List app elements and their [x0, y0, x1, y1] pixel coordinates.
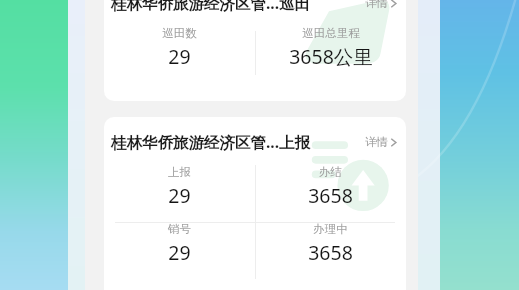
staticText: 29 — [168, 43, 191, 70]
button[interactable]: 详情 — [361, 0, 397, 10]
staticText: 29 — [168, 239, 191, 266]
other: 详情 — [390, 0, 397, 9]
staticText: 桂林华侨旅游经济区管...巡田 — [111, 0, 311, 13]
staticText: 桂林华侨旅游经济区管...上报 — [111, 131, 311, 152]
staticText: 3658公里 — [289, 43, 373, 70]
other: 详情 — [390, 137, 397, 148]
staticText: 巡田总里程 — [302, 26, 360, 40]
staticText: 上报 — [168, 165, 191, 179]
button[interactable]: 办理中 — [255, 222, 406, 279]
button[interactable]: 销号 — [104, 222, 255, 279]
staticText: 销号 — [168, 222, 191, 236]
button[interactable]: 巡田总里程 — [255, 26, 406, 80]
staticText: 详情 — [365, 0, 388, 10]
button[interactable]: 上报 — [104, 165, 255, 222]
button[interactable]: 桂林华侨旅游经济区管...上报 — [104, 117, 406, 290]
button[interactable]: 桂林华侨旅游经济区管...巡田 — [104, 0, 406, 101]
button[interactable]: 详情 — [361, 135, 397, 149]
staticText: 办结 — [319, 165, 342, 179]
staticText: 29 — [168, 182, 191, 209]
button[interactable]: 巡田数 — [104, 26, 255, 80]
button[interactable]: 办结 — [255, 165, 406, 222]
staticText: 巡田数 — [162, 26, 197, 40]
staticText: 3658 — [308, 182, 353, 209]
staticText: 办理中 — [313, 222, 348, 236]
staticText: 详情 — [365, 135, 388, 149]
staticText: 3658 — [308, 239, 353, 266]
